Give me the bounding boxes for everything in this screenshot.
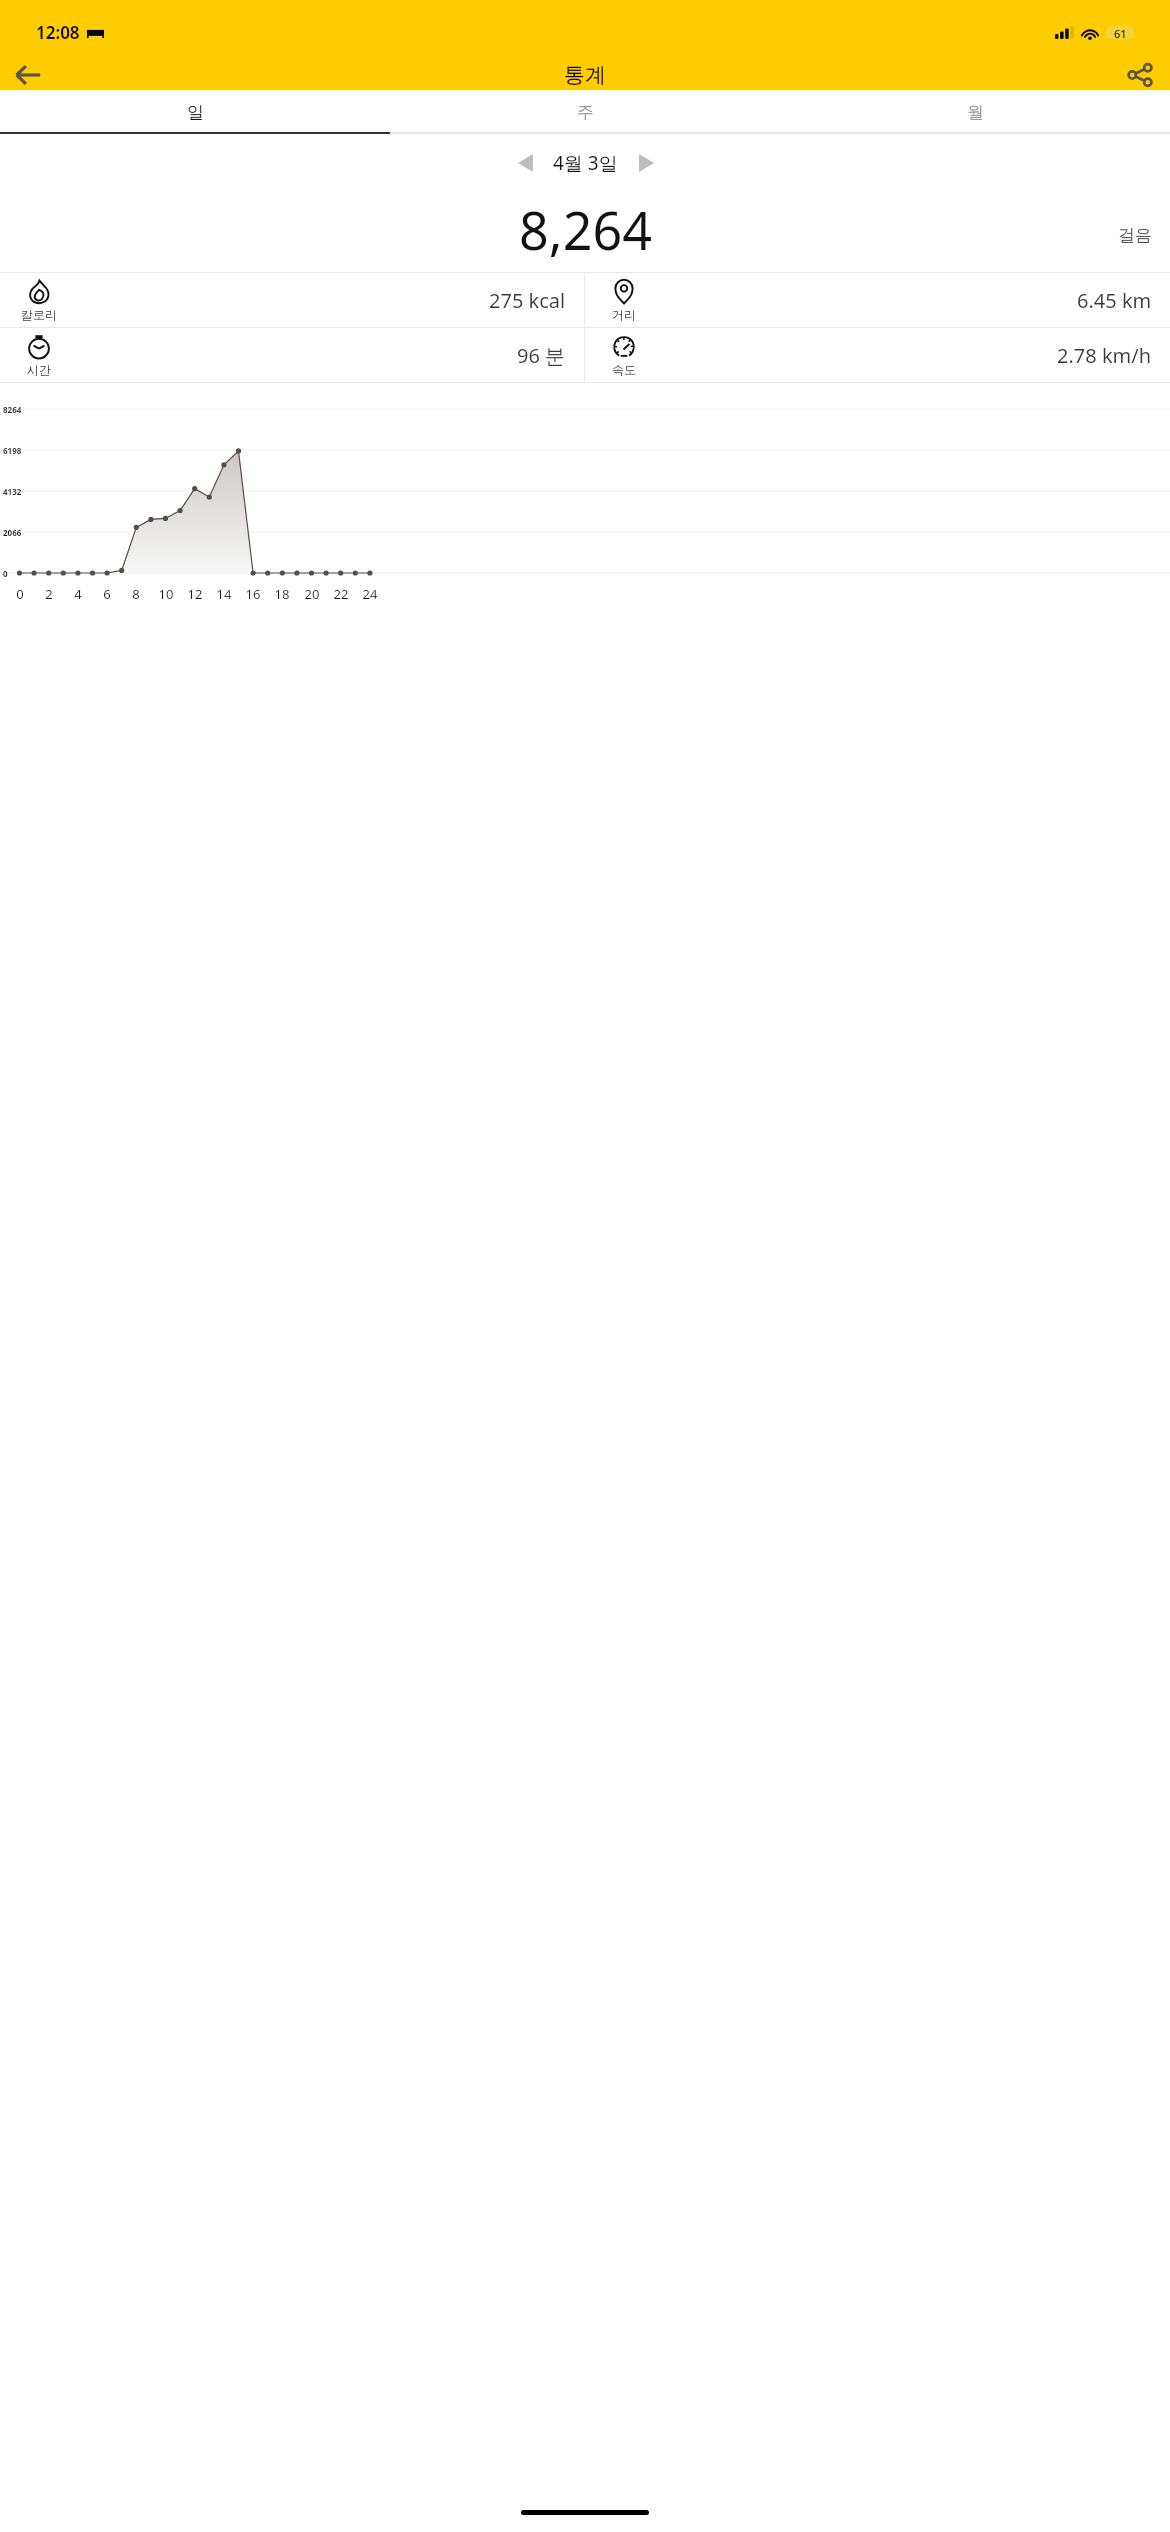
button[interactable]: 월	[780, 90, 1170, 134]
button[interactable]: Back	[4, 60, 52, 90]
button[interactable]: 칼로리	[0, 273, 584, 327]
button[interactable]: 주	[390, 90, 780, 134]
button[interactable]: 일	[0, 90, 390, 134]
staticText: 일	[187, 102, 204, 123]
button[interactable]: Previous day	[503, 141, 547, 185]
staticText: 2	[41, 585, 57, 603]
button[interactable]: 속도	[585, 328, 1170, 382]
staticText: 칼로리	[21, 307, 57, 322]
staticText: 16	[245, 585, 261, 603]
staticText: 2.78 km/h	[1057, 342, 1152, 369]
staticText: 0	[12, 585, 28, 603]
staticText: 8264	[3, 404, 22, 415]
staticText: 속도	[612, 362, 636, 377]
staticText: 시간	[27, 362, 51, 377]
staticText: 8	[128, 585, 144, 603]
staticText: 6.45 km	[1077, 287, 1152, 314]
staticText: 6	[99, 585, 115, 603]
staticText: 20	[304, 585, 320, 603]
staticText: 14	[216, 585, 232, 603]
staticText: 12:08	[36, 21, 80, 44]
staticText: 거리	[612, 307, 636, 322]
button[interactable]: 거리	[585, 273, 1170, 327]
staticText: 8,264	[519, 194, 652, 265]
staticText: 18	[274, 585, 290, 603]
staticText: 주	[577, 102, 594, 123]
staticText: 96 분	[517, 342, 566, 369]
staticText: 61	[1114, 26, 1127, 39]
staticText: 4132	[3, 486, 22, 497]
button[interactable]: Share	[1116, 60, 1164, 90]
button[interactable]: Next day	[624, 141, 668, 185]
staticText: 4월 3일	[553, 150, 618, 176]
staticText: 0	[3, 568, 8, 579]
staticText: 12	[187, 585, 203, 603]
staticText: 걸음	[1118, 225, 1152, 246]
staticText: 22	[333, 585, 349, 603]
staticText: 통계	[564, 62, 606, 88]
staticText: 24	[362, 585, 378, 603]
staticText: 6198	[3, 445, 22, 456]
button[interactable]: 시간	[0, 328, 584, 382]
staticText: 4	[70, 585, 86, 603]
staticText: 2066	[3, 527, 22, 538]
staticText: 10	[158, 585, 174, 603]
staticText: 월	[967, 102, 984, 123]
staticText: 275 kcal	[489, 287, 566, 314]
